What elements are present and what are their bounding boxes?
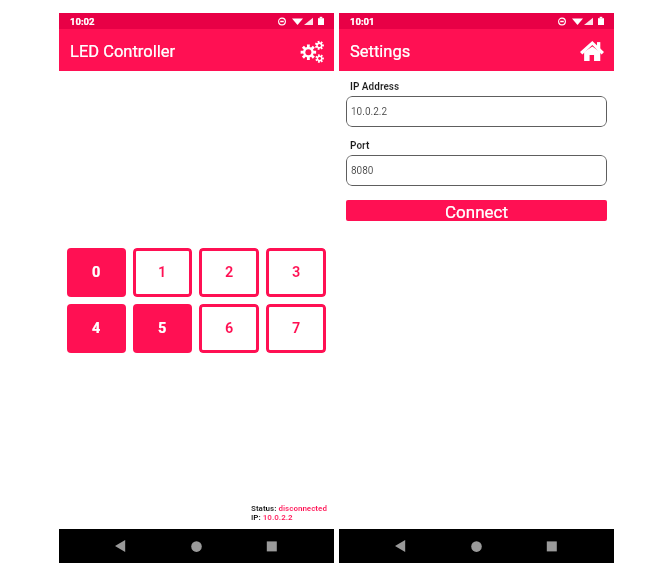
staticText: 3 (292, 264, 301, 281)
button[interactable]: Connect (346, 200, 607, 221)
button[interactable]: 5 (133, 304, 192, 353)
staticText: Status: disconnected (251, 504, 327, 513)
staticText: 0 (92, 264, 101, 281)
button[interactable]: Home (578, 36, 606, 64)
staticText: 1 (158, 264, 167, 281)
button[interactable]: Settings (298, 36, 326, 64)
button[interactable]: 8080 (346, 155, 607, 186)
staticText: 4 (92, 320, 101, 337)
staticText: Port (350, 140, 370, 152)
button[interactable]: 3 (266, 248, 326, 297)
staticText: 10:02 (70, 16, 95, 27)
staticText: 7 (292, 320, 301, 337)
staticText: 5 (158, 320, 167, 337)
staticText: LED Controller (70, 42, 176, 61)
button[interactable]: 6 (199, 304, 259, 353)
staticText: 10:01 (350, 16, 375, 27)
staticText: 2 (225, 264, 234, 281)
button[interactable]: 10.0.2.2 (346, 96, 607, 127)
button[interactable]: 1 (133, 248, 192, 297)
staticText: 8080 (351, 165, 374, 177)
button[interactable]: 7 (266, 304, 326, 353)
button[interactable]: 0 (67, 248, 126, 297)
button[interactable]: 2 (199, 248, 259, 297)
staticText: IP Address (350, 81, 400, 93)
button[interactable]: 4 (67, 304, 126, 353)
staticText: 6 (225, 320, 234, 337)
staticText: 10.0.2.2 (351, 106, 388, 118)
staticText: Connect (445, 202, 509, 221)
staticText: IP: 10.0.2.2 (251, 513, 293, 522)
staticText: Settings (350, 42, 411, 61)
